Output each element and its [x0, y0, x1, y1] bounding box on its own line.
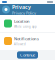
staticText: While using app [14, 25, 37, 28]
staticText: Continue [20, 52, 35, 58]
staticText: Privacy [12, 3, 31, 10]
button[interactable]: Notifications [0, 32, 55, 49]
button[interactable]: Continue [17, 51, 38, 59]
staticText: Allowed [14, 42, 26, 46]
button[interactable]: Location [0, 15, 55, 32]
staticText: Notifications [14, 36, 39, 41]
staticText: Location [14, 19, 30, 24]
staticText: Privacy Policy [12, 10, 36, 16]
